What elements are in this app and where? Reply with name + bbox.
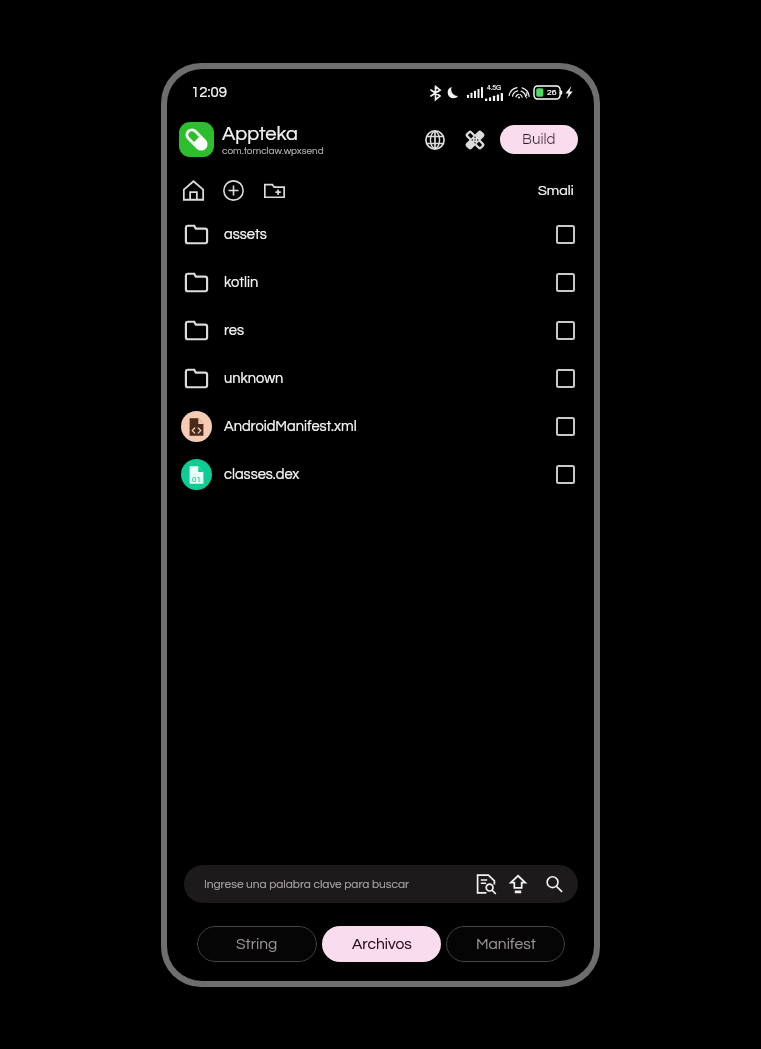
staticText: Manifest [476,936,536,952]
staticText: Appteka [222,124,298,145]
button[interactable]: Manifest [446,926,565,962]
staticText: Archivos [352,936,412,952]
button[interactable]: Open website [419,124,451,156]
button[interactable]: kotlin [167,258,594,306]
button[interactable]: Select unknown [556,369,575,388]
staticText: kotlin [224,275,259,290]
staticText: assets [224,227,267,242]
staticText: com.tomclaw.wpxsend [222,146,324,156]
staticText: 12:09 [191,85,228,100]
button[interactable]: Select AndroidManifest.xml [556,417,575,436]
button[interactable]: Smali [532,178,580,203]
button[interactable]: Select classes.dex [556,465,575,484]
staticText: Ingrese una palabra clave para buscar [204,878,410,890]
button[interactable]: Archivos [322,926,441,962]
staticText: Archivos [352,936,412,952]
button[interactable]: res [167,306,594,354]
button[interactable]: 01 [167,450,594,498]
staticText: String [236,936,278,952]
button[interactable]: unknown [167,354,594,402]
staticText: unknown [224,371,284,386]
button[interactable]: Upload [505,871,531,897]
staticText: res [224,323,245,338]
staticText: 4.5G [487,84,502,91]
staticText: Smali [538,183,574,198]
button[interactable]: assets [167,210,594,258]
button[interactable]: Select kotlin [556,273,575,292]
button[interactable]: Search [541,871,567,897]
button[interactable]: String [197,926,317,962]
button[interactable]: Home [177,174,209,206]
staticText: Build [522,132,556,147]
button[interactable]: Add [217,174,249,206]
button[interactable]: Select res [556,321,575,340]
button[interactable]: Search in file [473,871,499,897]
staticText: classes.dex [224,467,300,482]
button[interactable]: Ingrese una palabra clave para buscar [184,865,578,903]
staticText: 01 [192,475,201,483]
button[interactable]: Patch [459,124,491,156]
staticText: 26 [547,88,557,97]
button[interactable]: Select assets [556,225,575,244]
button[interactable]: Build [500,125,578,154]
staticText: AndroidManifest.xml [224,419,357,434]
button[interactable]: AndroidManifest.xml [167,402,594,450]
button[interactable]: App icon [179,122,214,157]
button[interactable]: New folder [258,174,290,206]
